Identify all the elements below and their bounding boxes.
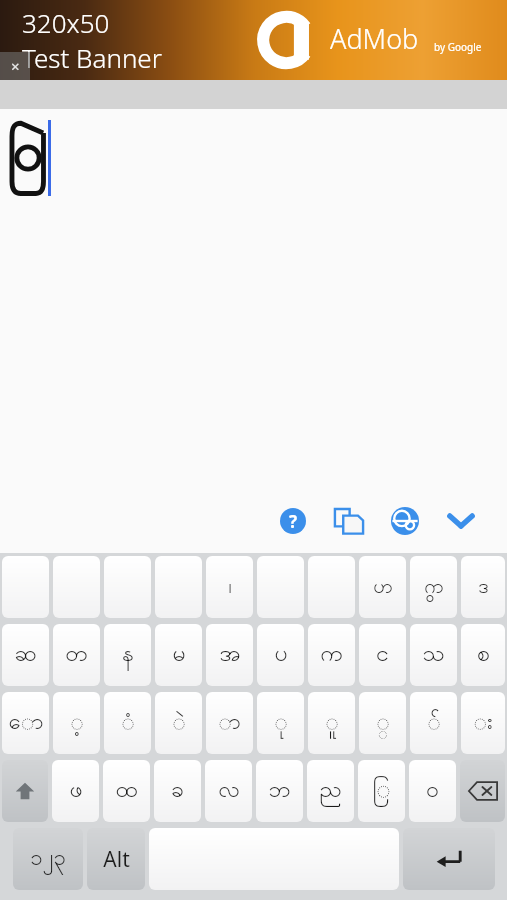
staticText: Alt: [103, 845, 130, 874]
button[interactable]: ည: [307, 760, 354, 822]
button[interactable]: က: [308, 624, 355, 686]
button[interactable]: Help: [265, 499, 321, 543]
button[interactable]: တ: [53, 624, 100, 686]
button[interactable]: ော: [2, 692, 49, 754]
button[interactable]: ံ: [104, 692, 151, 754]
button[interactable]: ဂွာ: [410, 556, 457, 618]
button[interactable]: ပ: [257, 624, 304, 686]
button[interactable]: း: [461, 692, 505, 754]
staticText: ူ: [325, 707, 339, 739]
staticText: စ: [477, 638, 490, 672]
staticText: ထ: [115, 774, 138, 808]
button[interactable]: Hide keyboard: [433, 499, 489, 543]
button[interactable]: ဝ: [409, 760, 456, 822]
button[interactable]: [53, 556, 100, 618]
button[interactable]: လ: [205, 760, 252, 822]
button[interactable]: ဆ: [2, 624, 49, 686]
staticText: ံ: [121, 707, 135, 739]
button[interactable]: ဟ: [359, 556, 406, 618]
staticText: း: [473, 707, 493, 739]
staticText: ဖ: [69, 774, 83, 808]
button[interactable]: စ: [461, 624, 505, 686]
staticText: က: [320, 638, 343, 672]
staticText: န: [122, 638, 134, 672]
button[interactable]: ့: [53, 692, 100, 754]
staticText: ပ: [274, 638, 288, 672]
staticText: ့: [70, 707, 84, 739]
button[interactable]: န: [104, 624, 151, 686]
staticText: Test Banner: [22, 40, 162, 75]
staticText: ၊: [228, 573, 232, 602]
button[interactable]: Enter: [403, 828, 495, 890]
staticText: ္: [376, 707, 390, 739]
staticText: ၁၂၃: [30, 843, 66, 875]
staticText: ×: [11, 56, 20, 76]
staticText: မ: [172, 638, 186, 672]
button[interactable]: ထ: [103, 760, 150, 822]
button[interactable]: ူ: [308, 692, 355, 754]
button[interactable]: ဒ: [461, 556, 505, 618]
staticText: သ: [422, 638, 445, 672]
staticText: ခ: [171, 774, 184, 808]
button[interactable]: ု: [257, 692, 304, 754]
button[interactable]: Close ad: [0, 52, 30, 80]
button[interactable]: [2, 556, 49, 618]
button[interactable]: ဖ: [52, 760, 99, 822]
button[interactable]: ဘ: [256, 760, 303, 822]
staticText: by Google: [434, 40, 482, 54]
staticText: ြ: [372, 774, 391, 808]
button[interactable]: ဲ: [155, 692, 202, 754]
staticText: အ: [219, 638, 241, 672]
button[interactable]: သ: [410, 624, 457, 686]
staticText: ည: [319, 774, 342, 808]
button[interactable]: Shift: [2, 760, 48, 822]
button[interactable]: ၊: [206, 556, 253, 618]
staticText: ဟ: [373, 573, 393, 602]
button[interactable]: [155, 556, 202, 618]
staticText: ဘ: [268, 774, 291, 808]
staticText: ာ: [218, 707, 241, 739]
button[interactable]: အ: [206, 624, 253, 686]
staticText: ဝ: [426, 774, 439, 808]
button[interactable]: ြ: [358, 760, 405, 822]
button[interactable]: Help: [0, 109, 507, 553]
button[interactable]: Copy: [321, 499, 377, 543]
button[interactable]: [308, 556, 355, 618]
button[interactable]: ်: [410, 692, 457, 754]
staticText: ော: [8, 707, 44, 739]
staticText: ်: [427, 707, 441, 739]
staticText: AdMob: [330, 20, 419, 57]
button[interactable]: ၁၂၃: [13, 828, 83, 890]
button[interactable]: [104, 556, 151, 618]
button[interactable]: ္: [359, 692, 406, 754]
button[interactable]: [257, 556, 304, 618]
staticText: ဆ: [14, 638, 37, 672]
staticText: 320x50: [22, 5, 110, 40]
staticText: ?: [289, 510, 298, 533]
button[interactable]: [149, 828, 399, 890]
staticText: လ: [218, 774, 240, 808]
button[interactable]: Backspace: [460, 760, 505, 822]
staticText: တ: [65, 638, 88, 672]
button[interactable]: 320x50: [0, 0, 507, 80]
button[interactable]: င: [359, 624, 406, 686]
staticText: င: [376, 638, 389, 672]
staticText: ဲ: [172, 707, 186, 739]
button[interactable]: Change language: [377, 499, 433, 543]
staticText: ဒ: [478, 573, 489, 602]
staticText: ဂွာ: [424, 573, 444, 602]
button[interactable]: မ: [155, 624, 202, 686]
staticText: ု: [274, 707, 288, 739]
button[interactable]: ခ: [154, 760, 201, 822]
button[interactable]: ာ: [206, 692, 253, 754]
button[interactable]: Alt: [87, 828, 145, 890]
